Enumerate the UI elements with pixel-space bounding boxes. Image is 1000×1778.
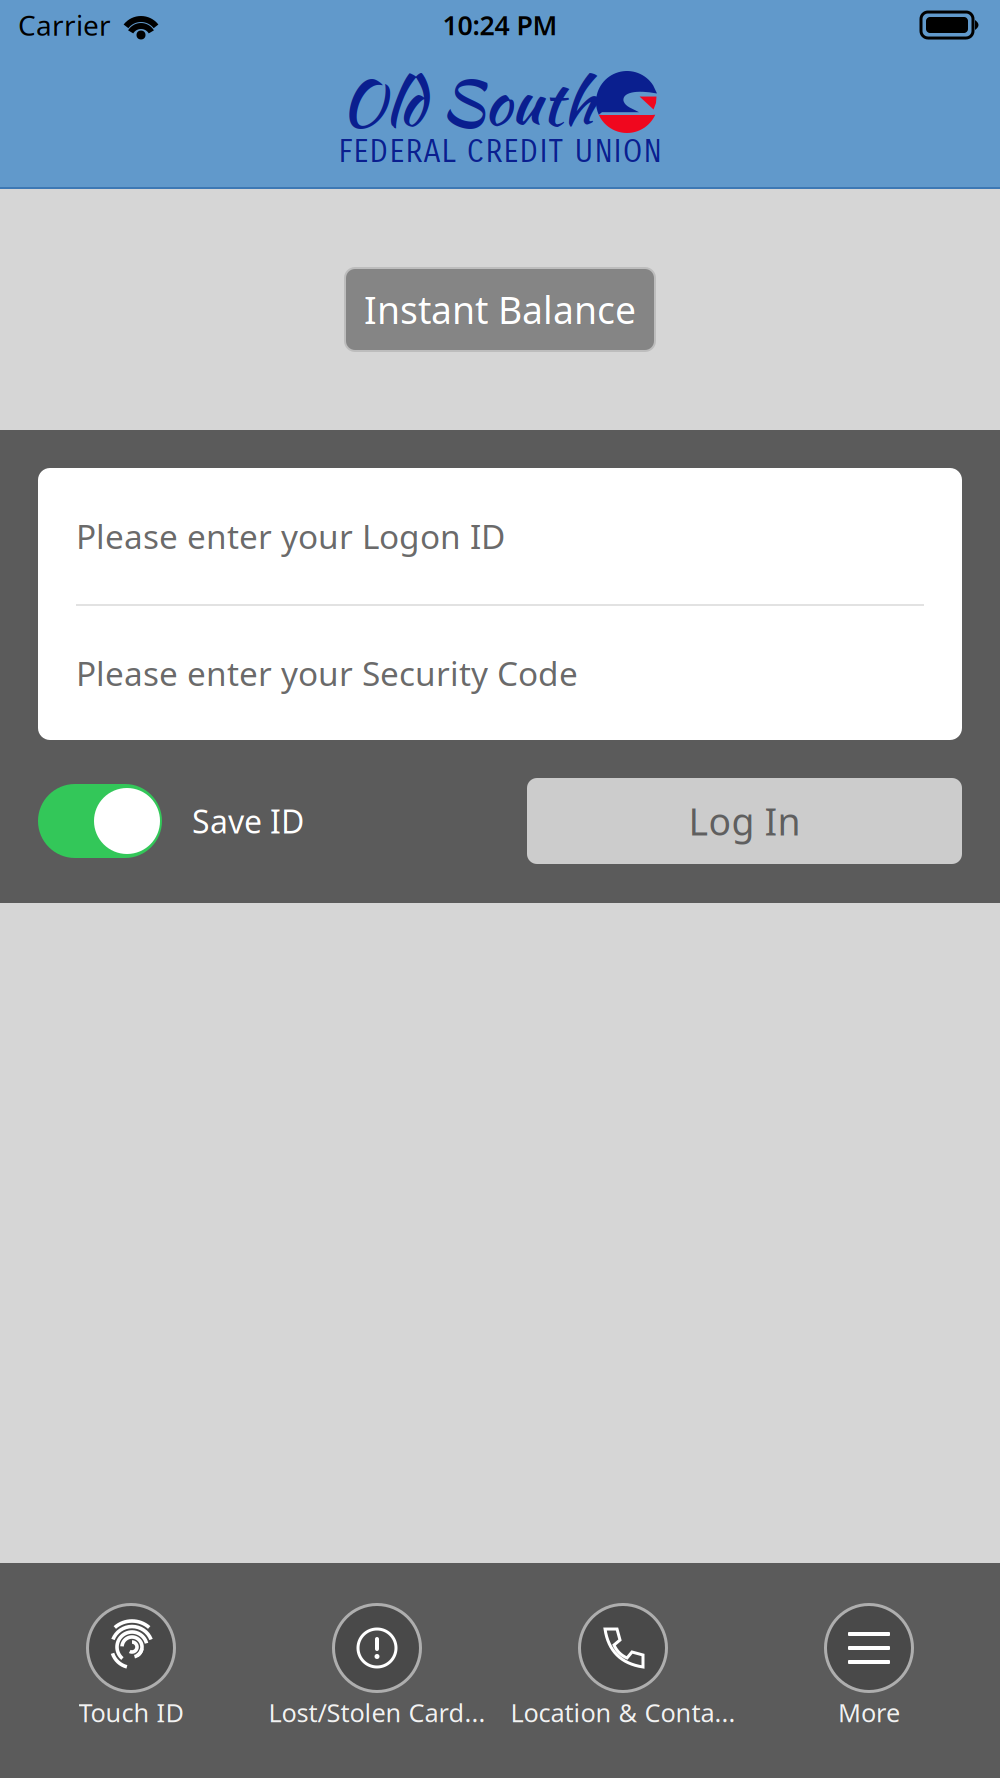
staticText: Save ID <box>192 800 304 842</box>
staticText: More <box>838 1696 900 1729</box>
staticText: Lost/Stolen Card... <box>268 1696 485 1729</box>
staticText: Old South <box>341 57 595 146</box>
button[interactable]: Log In <box>527 778 962 864</box>
button[interactable]: Location & Conta... <box>500 1565 746 1775</box>
button[interactable]: Touch ID <box>8 1565 254 1775</box>
button[interactable]: Lost/Stolen Card... <box>254 1565 500 1775</box>
button[interactable]: Instant Balance <box>345 268 655 351</box>
button[interactable]: Save ID <box>38 784 304 858</box>
button[interactable]: More <box>746 1565 992 1775</box>
staticText: FEDERAL CREDIT UNION <box>338 134 661 170</box>
staticText: Carrier <box>18 6 111 44</box>
staticText: 10:24 PM <box>442 7 557 43</box>
staticText: Instant Balance <box>364 285 636 334</box>
staticText: Touch ID <box>78 1696 183 1729</box>
staticText: Location & Conta... <box>510 1696 735 1729</box>
staticText: Please enter your Logon ID <box>76 514 505 558</box>
staticText: Log In <box>688 796 800 846</box>
staticText: Please enter your Security Code <box>76 651 578 695</box>
